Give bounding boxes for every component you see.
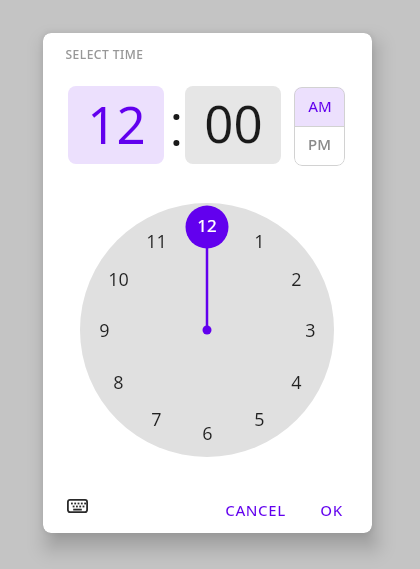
staticText: 2 xyxy=(291,267,302,292)
staticText: 11 xyxy=(146,229,167,254)
button[interactable] xyxy=(57,486,97,526)
staticText: 4 xyxy=(291,370,302,395)
staticText: 6 xyxy=(202,421,213,446)
staticText: 5 xyxy=(254,407,265,432)
staticText: 9 xyxy=(99,318,110,343)
button[interactable]: OK xyxy=(309,492,353,528)
staticText: 7 xyxy=(151,407,162,432)
staticText: PM xyxy=(308,134,331,154)
button[interactable]: 12 xyxy=(68,86,164,164)
button[interactable]: CANCEL xyxy=(217,492,293,528)
button[interactable]: AM xyxy=(294,87,345,126)
button[interactable] xyxy=(80,203,334,457)
staticText: 10 xyxy=(108,267,129,292)
staticText: 3 xyxy=(305,318,316,343)
staticText: 1 xyxy=(254,229,265,254)
staticText: AM xyxy=(308,96,332,116)
button[interactable]: PM xyxy=(294,127,345,166)
staticText: OK xyxy=(320,500,343,520)
staticText: 12 xyxy=(87,89,146,158)
staticText: 12 xyxy=(197,214,217,237)
staticText: CANCEL xyxy=(225,500,286,520)
button[interactable]: 00 xyxy=(185,86,281,164)
staticText: 00 xyxy=(204,88,263,157)
staticText: 8 xyxy=(113,370,124,395)
staticText: SELECT TIME xyxy=(65,46,144,62)
